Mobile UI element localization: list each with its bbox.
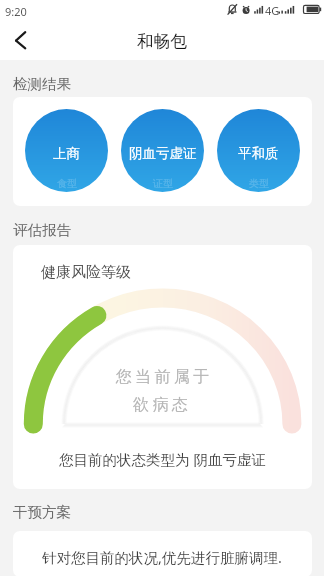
staticText: 您当前属于	[114, 367, 211, 387]
staticText: 检测结果	[13, 75, 71, 93]
staticText: 针对您目前的状况,优先进行脏腑调理.	[42, 547, 282, 567]
staticText: 和畅包	[0, 31, 324, 52]
staticText: 食型	[57, 177, 77, 190]
staticText: 您目前的状态类型为 阴血亏虚证	[13, 449, 312, 469]
button[interactable]: 上商	[25, 109, 108, 192]
staticText: 证型	[153, 177, 173, 190]
staticText: 类型	[249, 177, 269, 190]
button[interactable]: 平和质	[217, 109, 300, 192]
staticText: 平和质	[238, 145, 279, 162]
staticText: 上商	[53, 145, 80, 162]
staticText: 欲病态	[133, 395, 192, 415]
staticText: 评估报告	[13, 221, 71, 239]
button[interactable]: 阴血亏虚证	[121, 109, 204, 192]
staticText: 健康风险等级	[41, 263, 131, 282]
staticText: 干预方案	[13, 503, 71, 521]
button[interactable]: Back	[2, 20, 40, 58]
staticText: 9:20	[5, 4, 27, 19]
staticText: 4G	[265, 3, 280, 18]
staticText: 阴血亏虚证	[129, 145, 197, 162]
